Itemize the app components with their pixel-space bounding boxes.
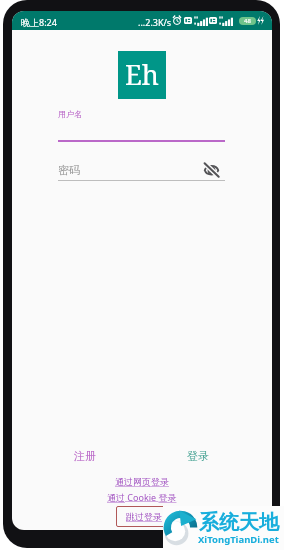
staticText: 用户名 — [58, 109, 82, 119]
staticText: Eh — [125, 56, 159, 93]
staticText: 注册 — [74, 449, 96, 463]
staticText: 系统天地 — [199, 510, 279, 535]
staticText: 密码 — [58, 163, 80, 177]
button[interactable]: 注册 — [68, 443, 102, 469]
button[interactable]: Show password — [204, 163, 219, 177]
button[interactable]: 跳过登录 — [116, 506, 172, 527]
button[interactable]: 通过 Cookie 登录 — [107, 491, 177, 503]
button[interactable]: 通过网页登录 — [115, 476, 169, 487]
button[interactable]: 登录 — [181, 443, 215, 469]
staticText: XiTongTianDi.net — [198, 533, 279, 546]
staticText: ...2.3K/s — [138, 16, 172, 28]
staticText: 晚上8:24 — [21, 16, 57, 28]
staticText: 48 — [244, 17, 251, 25]
staticText: 通过网页登录 — [115, 476, 169, 487]
staticText: 登录 — [187, 449, 209, 463]
staticText: 通过 Cookie 登录 — [107, 491, 177, 503]
staticText: 跳过登录 — [126, 511, 162, 522]
